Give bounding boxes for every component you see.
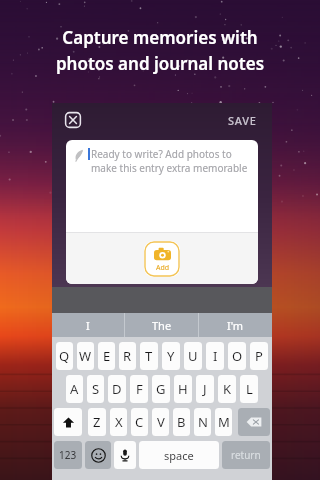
button[interactable]: C	[131, 408, 148, 436]
button[interactable]: Z	[88, 408, 106, 436]
button[interactable]: Shift	[54, 408, 82, 436]
staticText: H	[178, 380, 188, 398]
button[interactable]: U	[184, 342, 202, 370]
staticText: D	[112, 380, 122, 398]
button[interactable]: N	[194, 408, 211, 436]
button[interactable]: 123	[54, 441, 82, 469]
button[interactable]: I	[52, 313, 124, 337]
staticText: I	[213, 347, 218, 365]
button[interactable]: H	[174, 375, 192, 403]
staticText: X	[115, 413, 123, 431]
staticText: T	[145, 347, 153, 365]
button[interactable]: space	[139, 441, 219, 469]
button[interactable]: T	[140, 342, 158, 370]
staticText: S	[92, 380, 100, 398]
staticText: Z	[93, 413, 101, 431]
staticText: Q	[59, 347, 70, 365]
button[interactable]: P	[250, 342, 268, 370]
staticText: P	[255, 347, 263, 365]
staticText: A	[70, 380, 79, 398]
button[interactable]: SAVE	[225, 110, 260, 131]
button[interactable]: The	[125, 313, 198, 337]
button[interactable]: R	[119, 342, 136, 370]
staticText: return	[231, 448, 261, 462]
staticText: space	[164, 448, 194, 463]
button[interactable]: K	[218, 375, 236, 403]
staticText: I'm	[227, 318, 244, 333]
button[interactable]: D	[108, 375, 126, 403]
button[interactable]: Y	[162, 342, 180, 370]
button[interactable]: F	[130, 375, 148, 403]
button[interactable]: Q	[56, 342, 73, 370]
button[interactable]: O	[228, 342, 246, 370]
button[interactable]: A	[66, 375, 83, 403]
staticText: W	[79, 347, 92, 365]
staticText: C	[135, 413, 144, 431]
staticText: E	[103, 347, 111, 365]
staticText: B	[177, 413, 186, 431]
button[interactable]: W	[77, 342, 94, 370]
button[interactable]: G	[152, 375, 170, 403]
staticText: V	[157, 413, 165, 431]
button[interactable]: L	[240, 375, 258, 403]
staticText: L	[246, 380, 253, 398]
button[interactable]: S	[87, 375, 104, 403]
button[interactable]: J	[196, 375, 214, 403]
staticText: O	[232, 347, 243, 365]
button[interactable]: X	[110, 408, 127, 436]
button[interactable]: B	[173, 408, 190, 436]
button[interactable]: Close	[64, 111, 82, 129]
staticText: U	[188, 347, 198, 365]
button[interactable]: I	[206, 342, 224, 370]
button[interactable]: V	[152, 408, 169, 436]
button[interactable]: Backspace	[238, 408, 270, 436]
staticText: I	[86, 318, 90, 333]
staticText: The	[152, 318, 172, 333]
button[interactable]: E	[98, 342, 115, 370]
staticText: R	[123, 347, 132, 365]
staticText: M	[218, 413, 230, 431]
staticText: F	[136, 380, 143, 398]
staticText: N	[198, 413, 208, 431]
button[interactable]: I'm	[199, 313, 272, 337]
staticText: G	[156, 380, 166, 398]
button[interactable]: return	[222, 441, 270, 469]
staticText: Capture memories with photos and journal…	[12, 26, 308, 75]
staticText: K	[223, 380, 232, 398]
staticText: 123	[59, 448, 77, 462]
staticText: SAVE	[228, 113, 257, 128]
button[interactable]: Add photo	[144, 241, 180, 277]
button[interactable]: M	[215, 408, 232, 436]
staticText: J	[203, 380, 207, 398]
button[interactable]: Dictate	[114, 441, 136, 469]
staticText: Ready to write? Add photos to make this …	[91, 147, 248, 175]
staticText: Y	[167, 347, 175, 365]
button[interactable]: Emoji	[85, 441, 111, 469]
staticText: Add	[156, 263, 170, 273]
